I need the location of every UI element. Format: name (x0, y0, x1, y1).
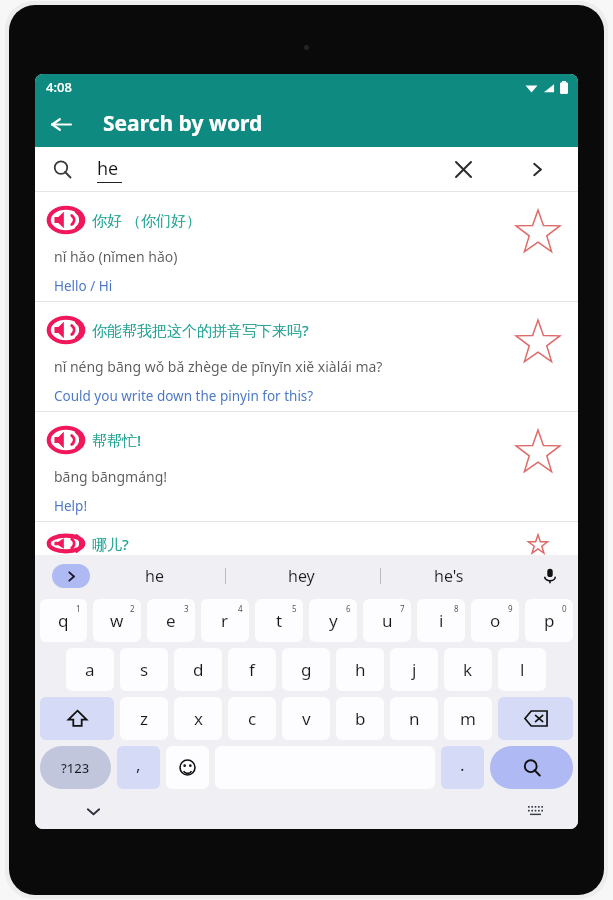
button[interactable]: w (93, 599, 141, 642)
staticText: 哪儿? (92, 534, 129, 554)
staticText: ?123 (61, 759, 90, 777)
staticText: c (248, 707, 257, 730)
staticText: f (249, 658, 255, 681)
button[interactable]: Favourite (510, 314, 566, 370)
staticText: 2 (130, 603, 135, 614)
button[interactable]: z (120, 697, 168, 740)
button[interactable]: Play audio (48, 312, 84, 348)
button[interactable]: Search (47, 154, 77, 184)
button[interactable]: Play audio (35, 412, 578, 521)
button[interactable]: Hide keyboard (79, 797, 107, 825)
button[interactable]: Back (41, 104, 81, 144)
button[interactable]: d (174, 648, 222, 691)
staticText: g (301, 658, 312, 681)
staticText: . (460, 753, 465, 776)
staticText: 3 (184, 603, 189, 614)
button[interactable]: Clear (446, 152, 480, 186)
button[interactable]: Play audio (48, 202, 84, 238)
staticText: o (490, 609, 501, 632)
staticText: Could you write down the pinyin for this… (54, 387, 314, 405)
button[interactable]: j (390, 648, 438, 691)
staticText: nǐ hǎo (nǐmen hǎo) (54, 247, 178, 266)
staticText: d (193, 658, 204, 681)
staticText: bāng bāngmáng! (54, 467, 168, 486)
button[interactable]: Go (520, 152, 554, 186)
button[interactable]: Emoji (166, 746, 209, 789)
button[interactable]: i (417, 599, 465, 642)
button[interactable]: s (120, 648, 168, 691)
staticText: u (382, 609, 393, 632)
staticText: 帮帮忙! (92, 430, 142, 450)
staticText: he's (434, 565, 464, 587)
button[interactable]: Play audio (35, 192, 578, 301)
staticText: l (520, 658, 525, 681)
button[interactable]: b (336, 697, 384, 740)
staticText: 4:08 (46, 78, 72, 96)
button[interactable]: n (390, 697, 438, 740)
button[interactable]: Play audio (48, 422, 84, 458)
staticText: 6 (346, 603, 351, 614)
button[interactable]: ?123 (40, 746, 111, 789)
button[interactable]: , (117, 746, 160, 789)
staticText: w (110, 609, 124, 632)
button[interactable]: r (201, 599, 249, 642)
button[interactable]: Backspace (498, 697, 573, 740)
button[interactable]: l (498, 648, 546, 691)
button[interactable]: he (145, 555, 164, 596)
button[interactable]: f (228, 648, 276, 691)
button[interactable]: Play audio (35, 302, 578, 411)
staticText: nǐ néng bāng wǒ bǎ zhège de pīnyīn xiě x… (54, 357, 383, 376)
button[interactable]: Favourite (510, 534, 566, 555)
staticText: hey (288, 565, 315, 587)
button[interactable]: he's (434, 555, 464, 596)
staticText: , (136, 753, 141, 776)
staticText: Hello / Hi (54, 277, 113, 295)
button[interactable]: e (147, 599, 195, 642)
button[interactable]: h (336, 648, 384, 691)
button[interactable]: m (444, 697, 492, 740)
button[interactable]: . (441, 746, 484, 789)
button[interactable]: Shift (40, 697, 114, 740)
staticText: j (412, 658, 417, 681)
button[interactable]: Play audio (48, 532, 84, 555)
button[interactable]: v (282, 697, 330, 740)
button[interactable]: q (40, 599, 87, 642)
staticText: x (194, 707, 203, 730)
button[interactable]: hey (288, 555, 315, 596)
button[interactable]: y (309, 599, 357, 642)
staticText: 8 (454, 603, 459, 614)
staticText: he (145, 565, 164, 587)
button[interactable]: Favourite (510, 424, 566, 480)
staticText: a (85, 658, 95, 681)
staticText: q (58, 609, 69, 632)
staticText: 7 (400, 603, 405, 614)
button[interactable]: p (525, 599, 573, 642)
button[interactable]: g (282, 648, 330, 691)
button[interactable]: t (255, 599, 303, 642)
button[interactable]: o (471, 599, 519, 642)
button[interactable]: x (174, 697, 222, 740)
button[interactable]: Favourite (510, 204, 566, 260)
button[interactable]: Expand suggestions (52, 564, 90, 588)
staticText: 你能帮我把这个的拼音写下来吗? (92, 320, 309, 340)
button[interactable]: k (444, 648, 492, 691)
staticText: m (460, 707, 476, 730)
staticText: Search by word (103, 109, 263, 138)
button[interactable]: a (66, 648, 114, 691)
staticText: z (140, 707, 148, 730)
staticText: 4 (238, 603, 243, 614)
staticText: t (276, 609, 283, 632)
button[interactable]: c (228, 697, 276, 740)
button[interactable]: u (363, 599, 411, 642)
staticText: y (329, 609, 338, 632)
staticText: 0 (562, 603, 567, 614)
button[interactable]: Voice input (534, 560, 566, 592)
staticText: h (355, 658, 366, 681)
staticText: p (544, 609, 555, 632)
button[interactable]: Play audio (35, 522, 578, 555)
button[interactable]: Search (490, 746, 573, 789)
button[interactable]: Change keyboard (522, 798, 548, 824)
staticText: he (97, 156, 119, 181)
staticText: 5 (292, 603, 297, 614)
